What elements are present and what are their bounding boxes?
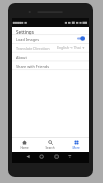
button[interactable]: Search bbox=[37, 137, 63, 152]
staticText: Load Images bbox=[16, 37, 40, 42]
staticText: Share with Friends bbox=[16, 64, 50, 69]
staticText: Search bbox=[45, 146, 55, 150]
staticText: Home bbox=[20, 146, 29, 150]
staticText: About bbox=[16, 55, 27, 60]
staticText: Settings bbox=[16, 29, 34, 35]
button[interactable]: Share with Friends bbox=[12, 61, 89, 70]
staticText: More bbox=[72, 146, 80, 150]
staticText: English → Thai ▾ bbox=[57, 45, 85, 50]
staticText: Translate Direction bbox=[16, 46, 50, 51]
button[interactable]: About bbox=[12, 52, 89, 61]
button[interactable]: Load images toggle bbox=[77, 36, 85, 41]
button[interactable]: More bbox=[63, 137, 89, 152]
button[interactable]: Translate Direction bbox=[12, 43, 89, 52]
button[interactable]: Home bbox=[12, 137, 37, 152]
button[interactable]: Load Images bbox=[12, 34, 89, 43]
